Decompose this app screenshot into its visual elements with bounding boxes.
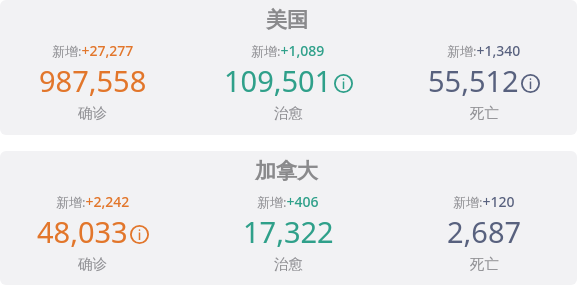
staticText: 新增:+27,277 [52, 41, 134, 60]
staticText: 48,033 [37, 212, 128, 251]
button[interactable]: 新增:+2,242 [0, 151, 190, 285]
staticText: 美国 [266, 7, 308, 33]
staticText: 死亡 [470, 255, 499, 273]
staticText: 987,558 [39, 61, 147, 100]
staticText: 新增:+120 [453, 192, 515, 211]
staticText: 新增:+406 [257, 192, 319, 211]
button[interactable]: 关于治愈的说明 [334, 74, 353, 93]
button[interactable]: 新增:+120 [386, 151, 577, 285]
button[interactable]: 新增:+1,089 [190, 0, 386, 135]
button[interactable]: 新增:+27,277 [0, 0, 190, 135]
button[interactable]: 关于死亡的说明 [521, 74, 540, 93]
button[interactable]: 加拿大 [0, 151, 577, 285]
staticText: 死亡 [470, 104, 499, 122]
staticText: 治愈 [274, 255, 303, 273]
staticText: 新增:+1,089 [251, 41, 325, 60]
staticText: 治愈 [274, 104, 303, 122]
staticText: 2,687 [447, 212, 522, 251]
button[interactable]: 美国 [0, 0, 577, 135]
button[interactable]: 新增:+1,340 [386, 0, 577, 135]
staticText: 确诊 [78, 255, 107, 273]
staticText: 109,501 [224, 61, 332, 100]
staticText: 新增:+2,242 [56, 192, 130, 211]
button[interactable]: 关于确诊的说明 [130, 225, 149, 244]
staticText: 确诊 [78, 104, 107, 122]
staticText: 17,322 [243, 212, 334, 251]
staticText: 新增:+1,340 [447, 41, 521, 60]
staticText: 55,512 [428, 61, 519, 100]
button[interactable]: 新增:+406 [190, 151, 386, 285]
staticText: 加拿大 [255, 158, 318, 184]
